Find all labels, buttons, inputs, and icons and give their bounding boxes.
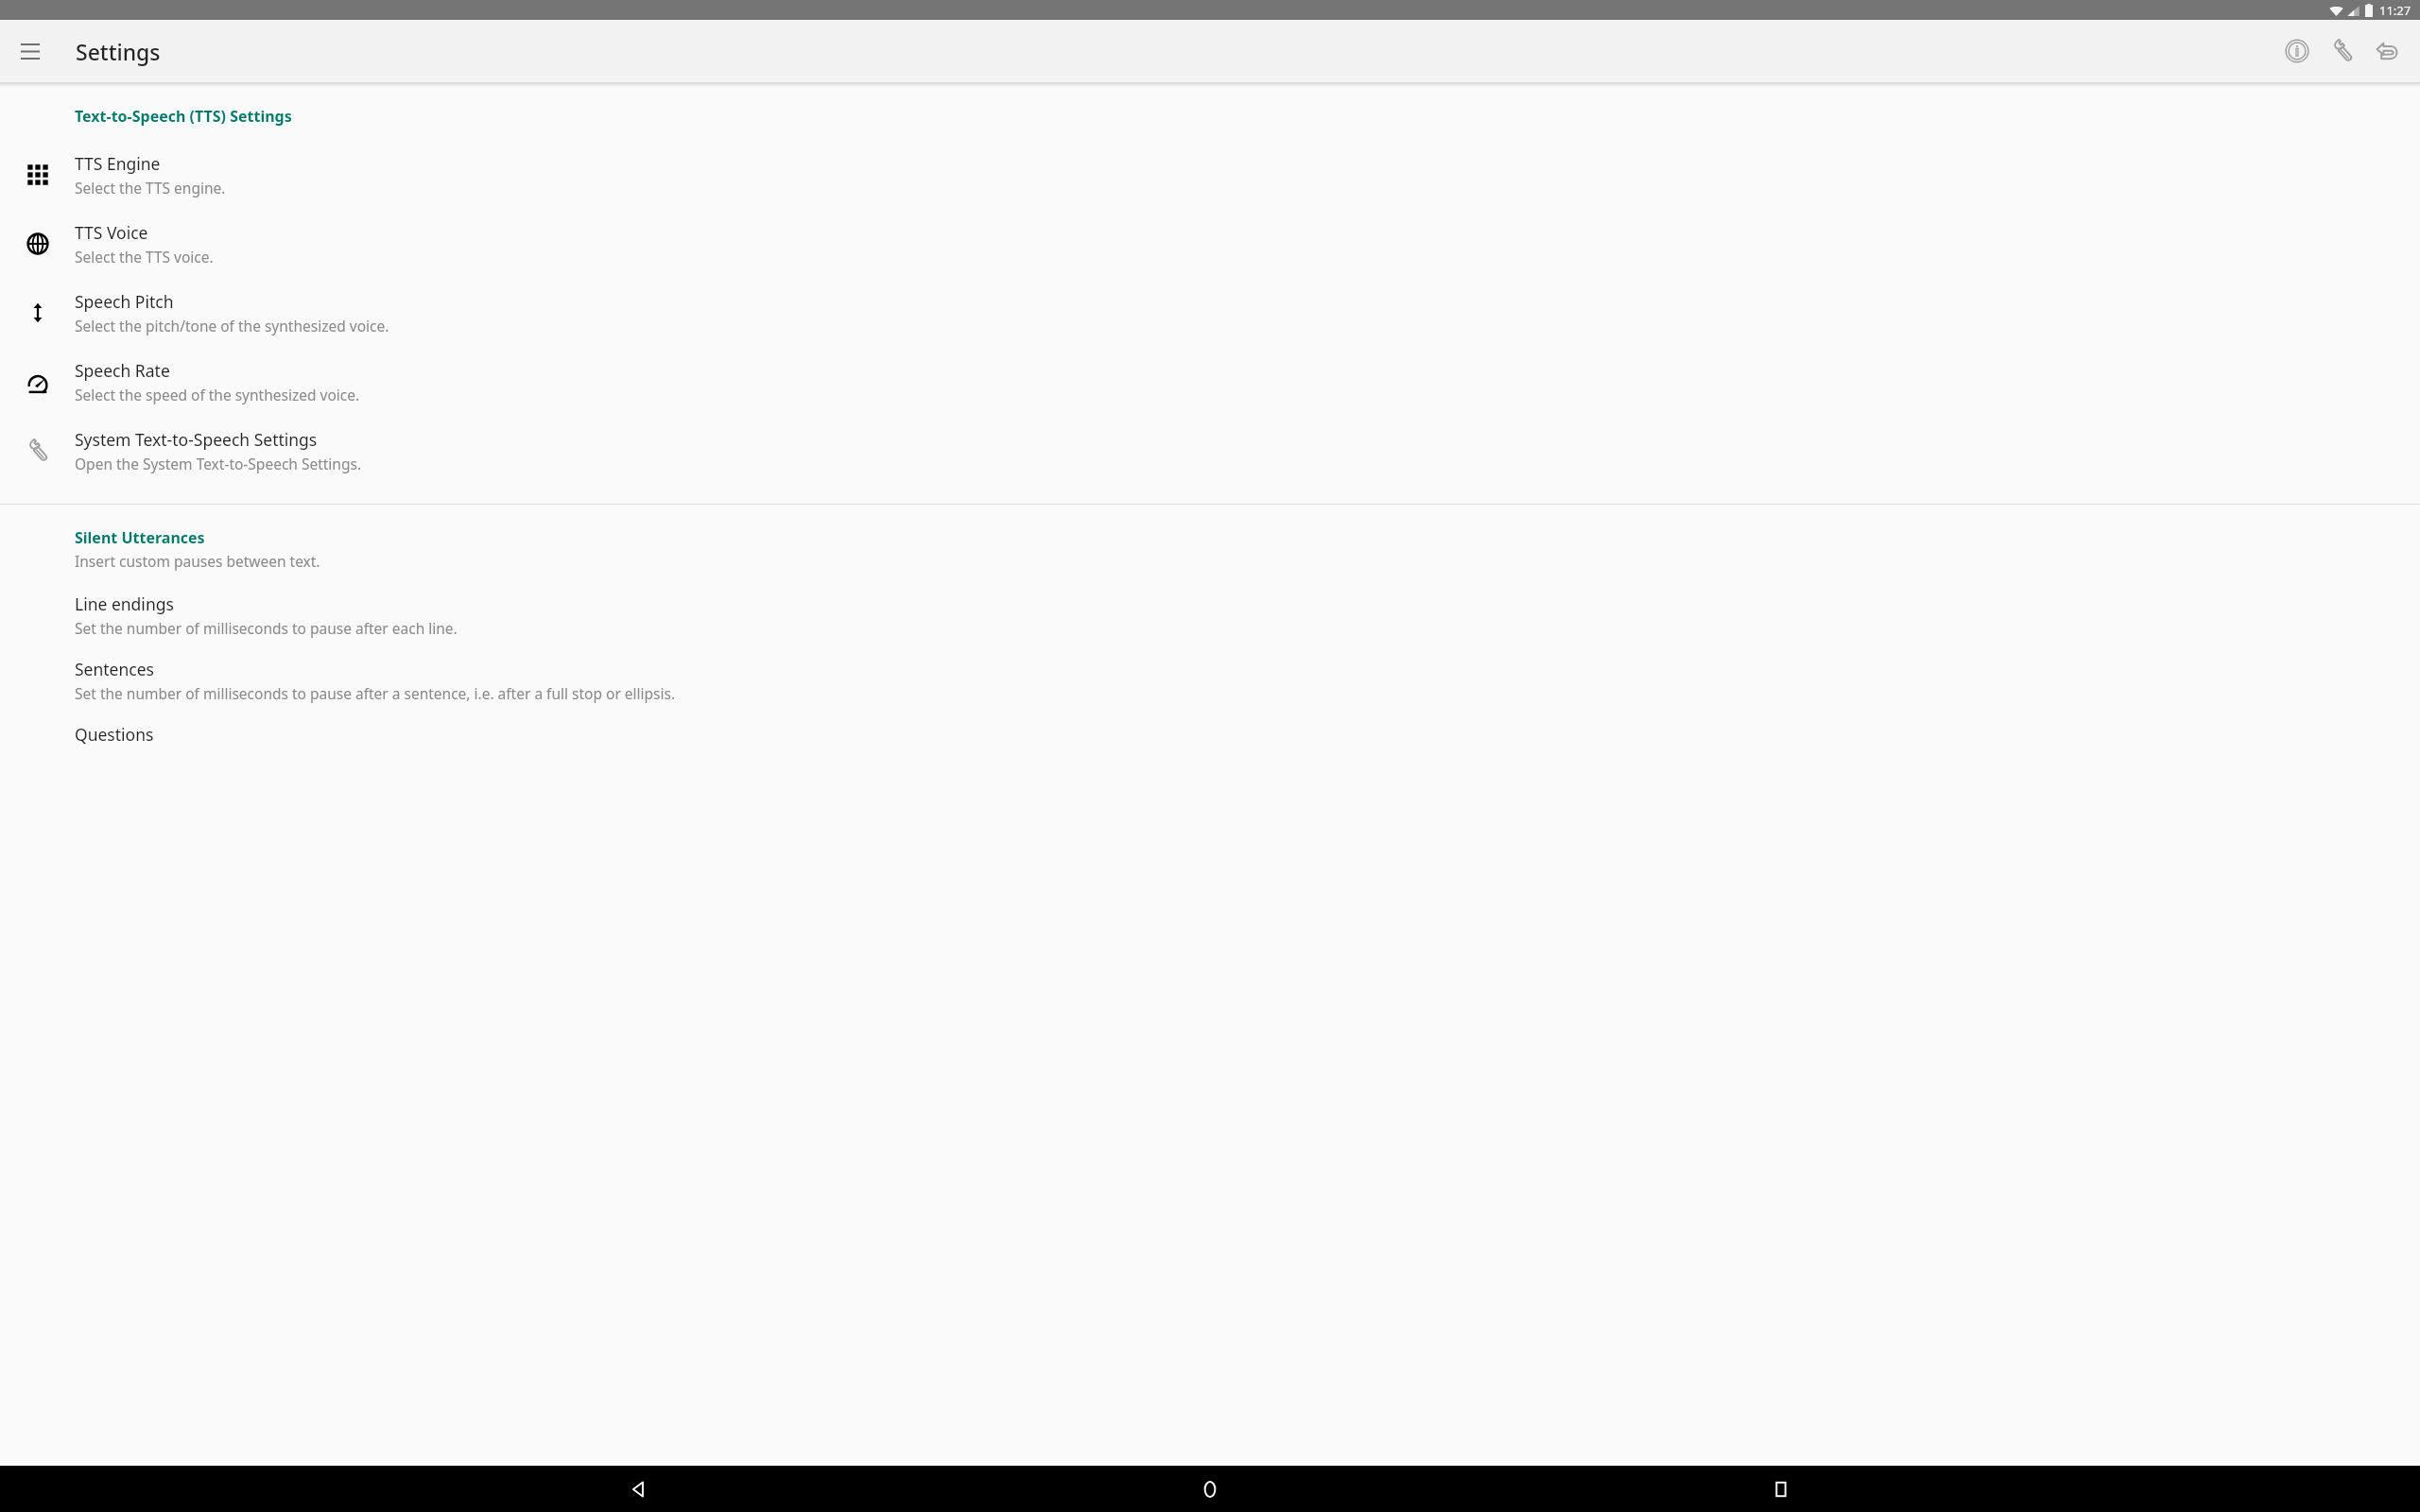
staticText: Text-to-Speech (TTS) Settings xyxy=(75,106,292,127)
staticText: TTS Engine xyxy=(75,152,161,175)
staticText: System Text-to-Speech Settings xyxy=(75,428,318,451)
staticText: Speech Rate xyxy=(75,359,170,382)
button[interactable]: TTS Engine xyxy=(0,140,2420,209)
button[interactable]: Info xyxy=(2274,28,2320,74)
button[interactable]: Open navigation menu xyxy=(8,28,53,74)
staticText: Select the TTS engine. xyxy=(75,178,226,198)
staticText: Select the TTS voice. xyxy=(75,247,214,266)
staticText: Set the number of milliseconds to pause … xyxy=(75,618,458,638)
button[interactable]: Tools xyxy=(2320,28,2365,74)
staticText: Select the speed of the synthesized voic… xyxy=(75,385,360,404)
staticText: Sentences xyxy=(75,658,154,680)
button[interactable]: Reset xyxy=(2365,28,2411,74)
staticText: Open the System Text-to-Speech Settings. xyxy=(75,454,362,473)
button[interactable]: TTS Voice xyxy=(0,209,2420,278)
staticText: TTS Voice xyxy=(75,221,148,244)
button[interactable]: Speech Pitch xyxy=(0,278,2420,347)
button[interactable]: Speech Rate xyxy=(0,347,2420,416)
button[interactable]: Questions xyxy=(0,723,2420,746)
button[interactable]: Line endings xyxy=(0,593,2420,638)
button[interactable]: System Text-to-Speech Settings xyxy=(0,416,2420,485)
staticText: Line endings xyxy=(75,593,174,615)
staticText: Set the number of milliseconds to pause … xyxy=(75,683,676,703)
staticText: Select the pitch/tone of the synthesized… xyxy=(75,316,389,335)
button[interactable]: Home xyxy=(1184,1466,1236,1512)
staticText: Speech Pitch xyxy=(75,290,174,313)
staticText: Questions xyxy=(75,723,154,746)
button[interactable]: Sentences xyxy=(0,658,2420,703)
staticText: Insert custom pauses between text. xyxy=(75,551,320,571)
staticText: Silent Utterances xyxy=(75,527,205,548)
staticText: 11:27 xyxy=(2379,2,2411,19)
button[interactable]: Recent apps xyxy=(1754,1466,1807,1512)
staticText: Settings xyxy=(76,37,161,66)
button[interactable]: Back xyxy=(613,1466,665,1512)
